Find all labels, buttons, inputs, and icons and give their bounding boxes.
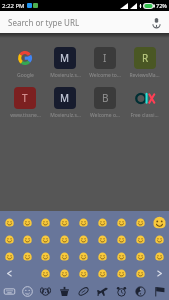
button[interactable]: Emoji: [55, 231, 74, 248]
button[interactable]: B: [85, 82, 125, 122]
button[interactable]: Animals: [36, 282, 55, 300]
staticText: Welcome o...: [90, 112, 120, 119]
button[interactable]: Emoji: [74, 265, 93, 282]
button[interactable]: T: [5, 82, 45, 122]
button[interactable]: Emoji: [36, 214, 55, 231]
button[interactable]: Emoji: [74, 231, 93, 248]
button[interactable]: R: [125, 42, 164, 82]
button[interactable]: Emoji: [93, 214, 112, 231]
button[interactable]: Emoji: [74, 248, 93, 265]
button[interactable]: Flags: [150, 282, 169, 300]
staticText: ReviewsMa...: [129, 72, 160, 79]
button[interactable]: Emoji: [112, 265, 131, 282]
button[interactable]: Emoji: [112, 248, 131, 265]
button[interactable]: Emoji: [55, 248, 74, 265]
button[interactable]: Emoji: [131, 231, 150, 248]
button[interactable]: Sports: [74, 282, 93, 300]
button[interactable]: Emoji: [93, 265, 112, 282]
button[interactable]: M: [45, 42, 85, 82]
staticText: M: [60, 51, 70, 65]
staticText: I: [103, 51, 107, 65]
staticText: 2:22 PM: [2, 2, 25, 10]
button[interactable]: Keyboard: [0, 282, 18, 300]
button[interactable]: Emoji: [131, 214, 150, 231]
button[interactable]: Emoji: [0, 248, 18, 265]
staticText: Search or type URL: [8, 17, 80, 28]
button[interactable]: Previous page: [0, 265, 18, 282]
staticText: Google: [17, 72, 34, 79]
button[interactable]: Emoji: [36, 231, 55, 248]
button[interactable]: Emoji: [150, 248, 169, 265]
button[interactable]: Emoji: [18, 214, 36, 231]
button[interactable]: Food: [55, 282, 74, 300]
button[interactable]: Emoji: [93, 231, 112, 248]
button[interactable]: Recent: [112, 282, 131, 300]
button[interactable]: Emoji: [112, 214, 131, 231]
button[interactable]: M: [45, 82, 85, 122]
staticText: M: [60, 91, 70, 105]
staticText: 72%: [156, 2, 167, 9]
button[interactable]: Emoji: [112, 231, 131, 248]
button[interactable]: Emoji: [150, 231, 169, 248]
button[interactable]: Voice search: [149, 15, 163, 29]
button[interactable]: Free classi...: [125, 82, 164, 122]
button[interactable]: Emoji: [0, 231, 18, 248]
staticText: Welcome to...: [89, 72, 121, 79]
button[interactable]: Smileys: [18, 282, 36, 300]
staticText: www.tissne...: [10, 112, 41, 119]
staticText: R: [142, 51, 149, 65]
button[interactable]: Google: [5, 42, 45, 82]
button[interactable]: Emoji: [0, 214, 18, 231]
button[interactable]: Emoji: [55, 214, 74, 231]
staticText: B: [102, 91, 109, 105]
button[interactable]: Next page: [150, 265, 169, 282]
button[interactable]: Emoji: [131, 265, 150, 282]
button[interactable]: Emoji: [36, 248, 55, 265]
button[interactable]: Emoji: [36, 265, 55, 282]
button[interactable]: Emoji: [74, 214, 93, 231]
button[interactable]: Emoji: [131, 248, 150, 265]
staticText: T: [22, 91, 28, 105]
button[interactable]: Symbols: [131, 282, 150, 300]
button[interactable]: Travel: [93, 282, 112, 300]
button[interactable]: Search or type URL: [0, 11, 169, 33]
button[interactable]: Emoji: [93, 248, 112, 265]
staticText: Free classi...: [130, 112, 159, 119]
button[interactable]: Emoji: [150, 214, 169, 231]
staticText: Movierulz.s...: [50, 112, 81, 119]
button[interactable]: Emoji: [18, 231, 36, 248]
button[interactable]: I: [85, 42, 125, 82]
staticText: Movierulz.s...: [50, 72, 81, 79]
button[interactable]: Emoji: [55, 265, 74, 282]
button[interactable]: Emoji: [18, 248, 36, 265]
